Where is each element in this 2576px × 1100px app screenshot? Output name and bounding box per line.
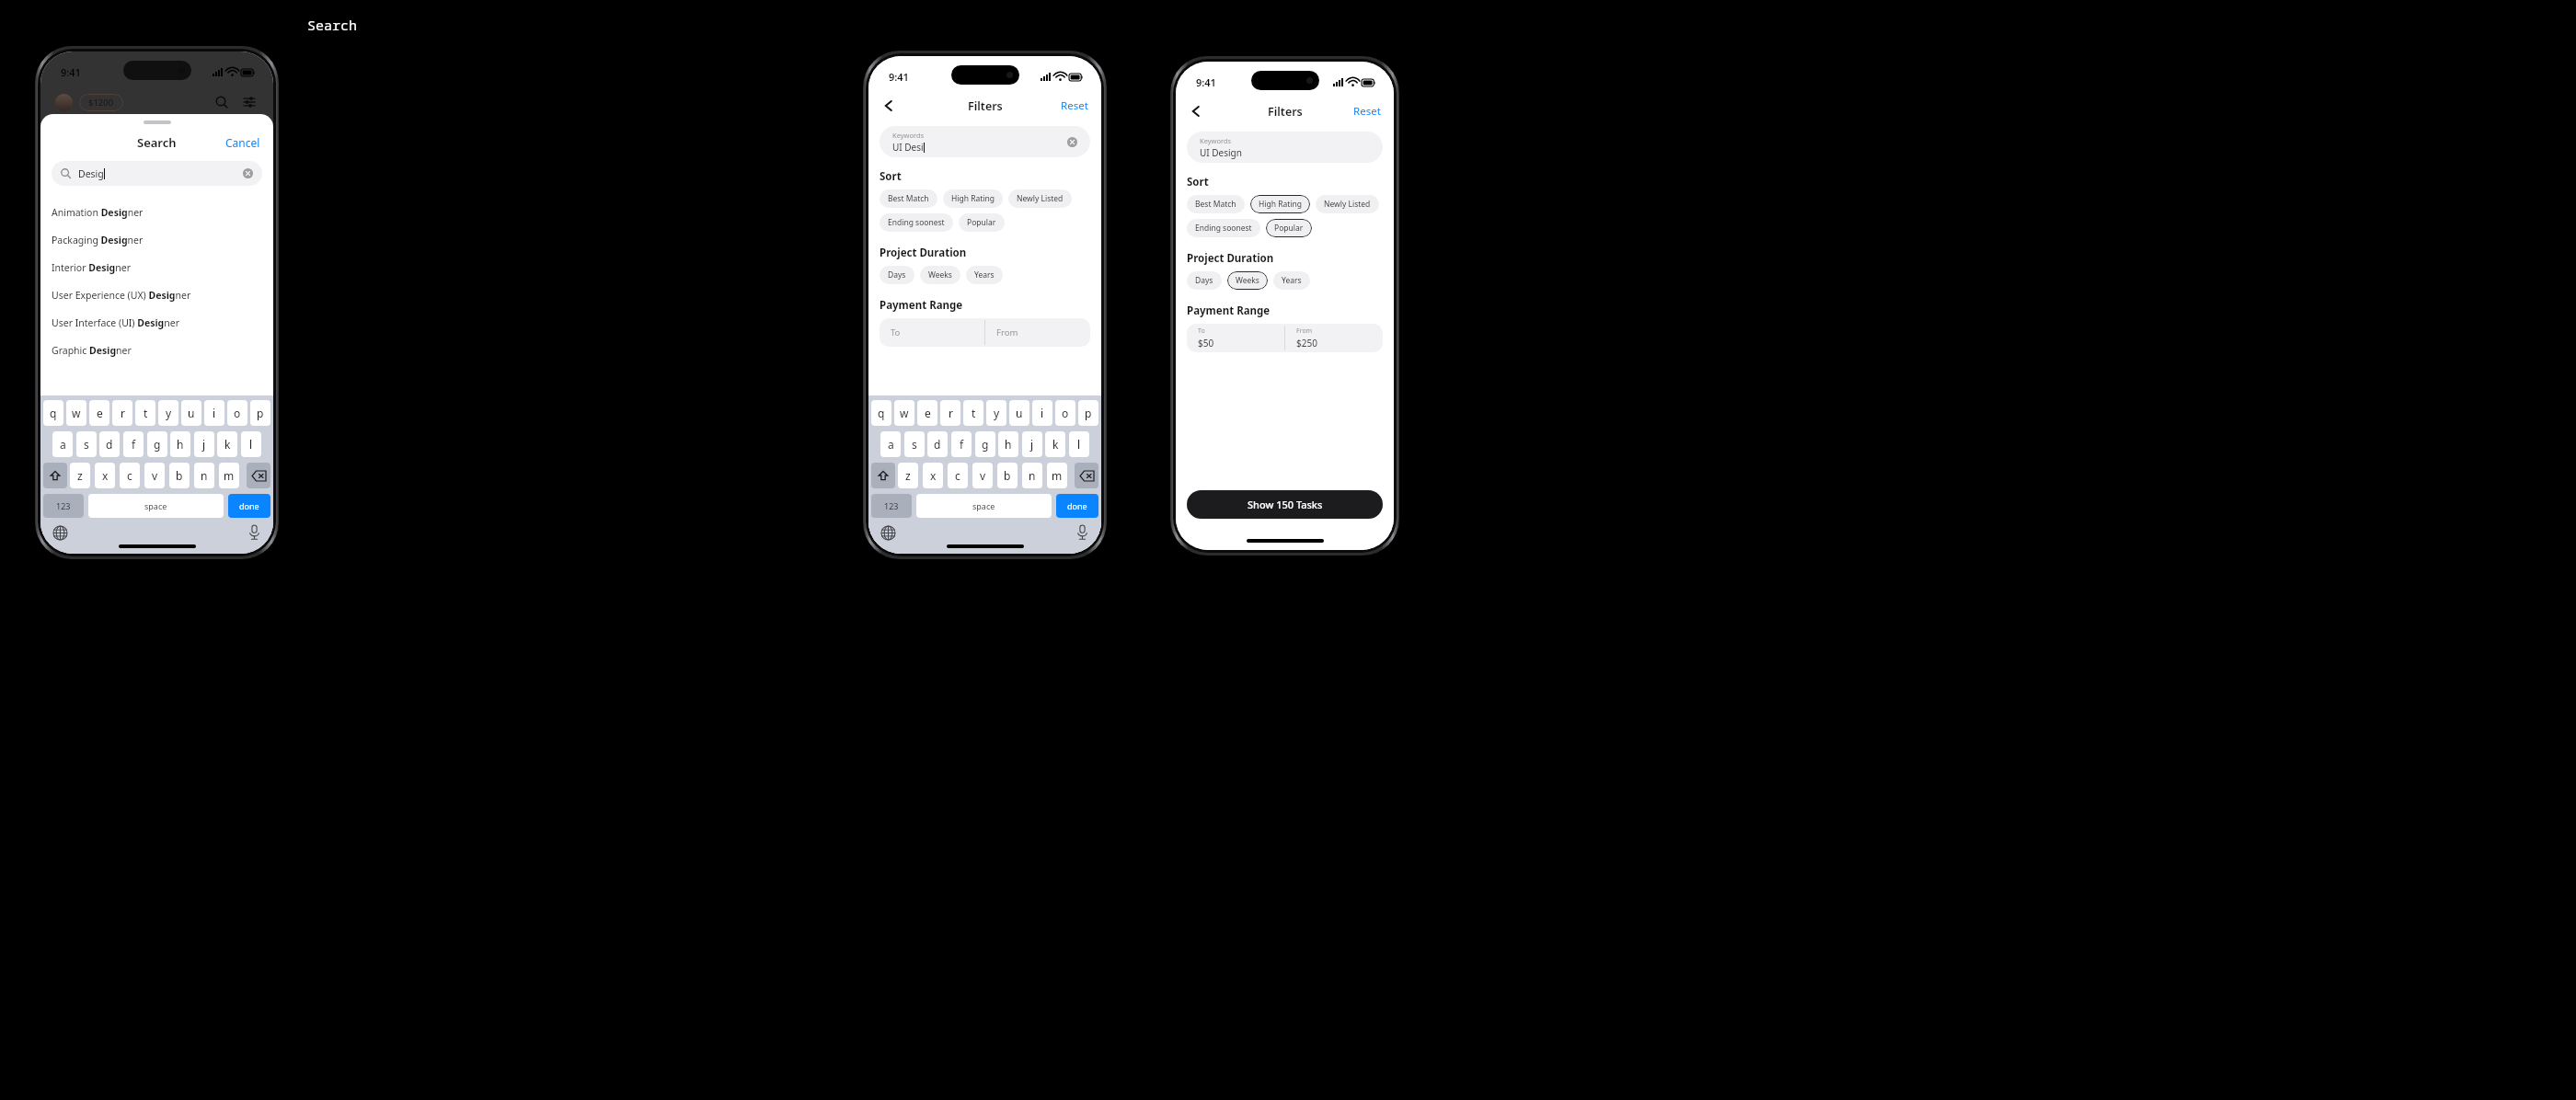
button[interactable]: i [204, 400, 224, 426]
button[interactable]: y [986, 400, 1006, 426]
button[interactable]: space [88, 494, 224, 518]
button[interactable]: r [112, 400, 132, 426]
button[interactable]: m [219, 463, 239, 488]
button[interactable]: j [194, 431, 214, 457]
button[interactable]: u [181, 400, 201, 426]
button[interactable]: High Rating [1259, 195, 1302, 213]
button[interactable]: g [147, 431, 167, 457]
button[interactable]: z [898, 463, 918, 488]
button[interactable]: Best Match [888, 189, 929, 208]
button[interactable]: Profile [55, 94, 73, 111]
button[interactable]: v [972, 463, 993, 488]
button[interactable]: m [1047, 463, 1067, 488]
button[interactable]: Reset [1061, 98, 1088, 113]
button[interactable]: l [1069, 431, 1089, 457]
button[interactable]: done [228, 494, 270, 518]
button[interactable]: o [1055, 400, 1075, 426]
button[interactable]: r [940, 400, 960, 426]
button[interactable]: done [1056, 494, 1098, 518]
button[interactable]: x [95, 463, 115, 488]
button[interactable]: Animation Designer [52, 199, 262, 226]
button[interactable]: k [217, 431, 237, 457]
button[interactable]: w [66, 400, 86, 426]
button[interactable]: Packaging Designer [52, 226, 262, 254]
button[interactable]: n [194, 463, 214, 488]
button[interactable]: a [52, 431, 73, 457]
button[interactable]: f [951, 431, 972, 457]
button[interactable]: Newly Listed [1017, 189, 1064, 208]
button[interactable]: Days [1195, 271, 1213, 290]
button[interactable]: f [123, 431, 144, 457]
button[interactable]: Search [213, 93, 231, 111]
button[interactable]: High Rating [951, 189, 995, 208]
button[interactable]: Reset [1353, 104, 1381, 119]
button[interactable]: Change keyboard [53, 526, 67, 540]
button[interactable]: Desig [61, 161, 253, 186]
button[interactable]: Shift [43, 463, 67, 488]
button[interactable]: t [963, 400, 983, 426]
button[interactable]: Days [888, 266, 906, 284]
button[interactable]: Dictation [248, 525, 260, 540]
button[interactable]: Change keyboard [881, 526, 895, 540]
button[interactable]: Back [1187, 102, 1205, 120]
button[interactable]: j [1022, 431, 1042, 457]
button[interactable]: Shift [871, 463, 895, 488]
button[interactable]: 123 [43, 494, 84, 518]
button[interactable]: Clear [1067, 137, 1077, 147]
button[interactable]: l [241, 431, 261, 457]
button[interactable]: Years [974, 266, 995, 284]
button[interactable]: y [158, 400, 178, 426]
button[interactable]: Weeks [928, 266, 952, 284]
button[interactable]: a [880, 431, 901, 457]
button[interactable]: e [89, 400, 109, 426]
button[interactable]: From [1296, 324, 1372, 352]
button[interactable]: User Experience (UX) Designer [52, 281, 262, 309]
button[interactable]: Keywords [1200, 132, 1370, 163]
button[interactable]: v [144, 463, 165, 488]
button[interactable]: Popular [967, 213, 996, 232]
button[interactable]: $1200 [88, 94, 114, 111]
button[interactable]: w [894, 400, 914, 426]
button[interactable]: c [948, 463, 968, 488]
button[interactable]: Back [880, 97, 898, 115]
button[interactable]: Popular [1274, 219, 1304, 237]
button[interactable]: Show 150 Tasks [1187, 490, 1383, 519]
button[interactable]: To [891, 318, 973, 347]
button[interactable]: k [1045, 431, 1065, 457]
button[interactable]: u [1009, 400, 1029, 426]
button[interactable]: t [135, 400, 155, 426]
button[interactable]: Cancel [225, 135, 260, 150]
button[interactable]: b [997, 463, 1018, 488]
button[interactable]: Newly Listed [1324, 195, 1371, 213]
button[interactable]: Weeks [1236, 271, 1259, 290]
button[interactable]: To [1198, 324, 1273, 352]
button[interactable]: d [99, 431, 120, 457]
button[interactable]: g [975, 431, 995, 457]
button[interactable]: 123 [871, 494, 912, 518]
button[interactable]: User Interface (UI) Designer [52, 309, 262, 337]
button[interactable]: Best Match [1195, 195, 1236, 213]
button[interactable]: h [170, 431, 190, 457]
button[interactable]: q [871, 400, 891, 426]
button[interactable]: Backspace [247, 463, 270, 488]
button[interactable]: Years [1282, 271, 1302, 290]
button[interactable]: q [43, 400, 63, 426]
button[interactable]: n [1022, 463, 1042, 488]
button[interactable]: p [1078, 400, 1098, 426]
button[interactable]: Filters [240, 93, 259, 111]
button[interactable]: i [1032, 400, 1052, 426]
button[interactable]: p [250, 400, 270, 426]
button[interactable]: z [70, 463, 90, 488]
button[interactable]: Ending soonest [1195, 219, 1252, 237]
button[interactable]: s [904, 431, 925, 457]
button[interactable]: Backspace [1075, 463, 1098, 488]
button[interactable]: c [120, 463, 140, 488]
button[interactable]: Dictation [1076, 525, 1088, 540]
button[interactable]: space [916, 494, 1052, 518]
button[interactable]: Graphic Designer [52, 337, 262, 364]
button[interactable]: x [923, 463, 943, 488]
button[interactable]: Clear [243, 168, 253, 178]
button[interactable]: s [76, 431, 97, 457]
button[interactable]: e [917, 400, 937, 426]
button[interactable]: b [169, 463, 190, 488]
